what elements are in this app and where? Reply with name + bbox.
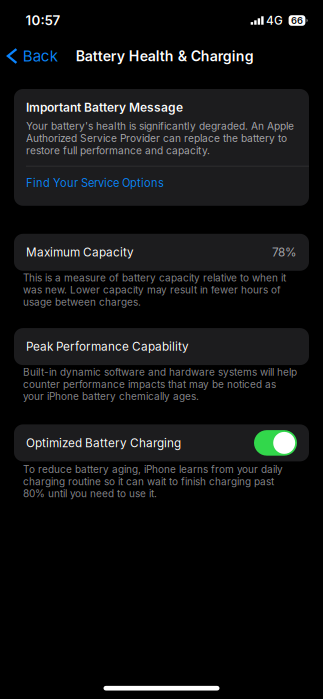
staticText: Peak Performance Capability [26,339,189,354]
button[interactable]: Back [0,41,65,71]
staticText: 78% [272,245,297,259]
button[interactable]: Find Your Service Options [14,166,309,206]
staticText: Find Your Service Options [26,176,164,190]
staticText: Back [23,47,58,65]
staticText: Optimized Battery Charging [26,436,181,450]
staticText: Your battery's health is significantly d… [26,120,294,157]
staticText: 10:57 [25,12,60,28]
staticText: Built-in dynamic software and hardware s… [23,366,297,402]
staticText: Battery Health & Charging [76,47,254,64]
staticText: 4G [266,13,283,28]
staticText: This is a measure of battery capacity re… [23,272,286,308]
staticText: To reduce battery aging, iPhone learns f… [23,463,283,500]
staticText: Important Battery Message [26,100,183,114]
staticText: 66 [291,15,303,26]
staticText: Maximum Capacity [26,245,134,259]
button[interactable]: Optimized Battery Charging [254,430,297,456]
